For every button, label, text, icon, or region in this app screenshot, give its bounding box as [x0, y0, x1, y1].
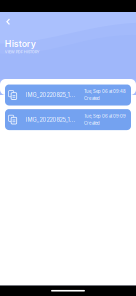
- button[interactable]: IMG_20220825_1...: [5, 84, 131, 105]
- staticText: IMG_20220825_1...: [25, 116, 75, 123]
- staticText: Tue, Sep 06 at 09:48: [84, 89, 126, 94]
- staticText: Created: [84, 96, 100, 101]
- button[interactable]: IMG_20220825_1...: [5, 109, 131, 130]
- staticText: Tue, Sep 06 at 09:09: [84, 113, 126, 119]
- staticText: IMG_20220825_1...: [25, 92, 75, 98]
- button[interactable]: Back: [2, 15, 15, 28]
- staticText: History: [5, 38, 36, 49]
- staticText: Created: [84, 120, 100, 126]
- staticText: VIEW PDF HISTORY: [5, 49, 40, 54]
